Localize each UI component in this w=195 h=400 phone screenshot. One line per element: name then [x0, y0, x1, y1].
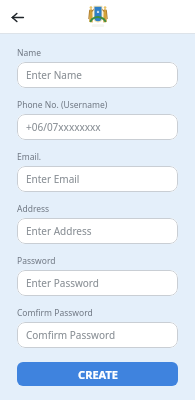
staticText: Name [17, 47, 41, 59]
staticText: Address [17, 203, 50, 215]
button[interactable]: Enter Name [17, 62, 178, 88]
staticText: Enter Password [26, 276, 99, 290]
button[interactable]: Enter Email [17, 166, 178, 192]
button[interactable]: Enter Address [17, 218, 178, 244]
button[interactable]: Back [4, 4, 30, 30]
staticText: Comfirm Password [26, 328, 116, 342]
button[interactable]: +06/07xxxxxxxx [17, 114, 178, 140]
staticText: Phone No. (Username) [17, 99, 108, 111]
button[interactable]: Comfirm Password [17, 322, 178, 348]
button[interactable]: Enter Password [17, 270, 178, 296]
staticText: Email. [17, 151, 42, 163]
staticText: Enter Name [26, 68, 82, 82]
staticText: CREATE [78, 367, 118, 382]
staticText: Password [17, 255, 56, 267]
staticText: Enter Address [26, 224, 92, 238]
staticText: Comfirm Password [17, 307, 93, 319]
staticText: +06/07xxxxxxxx [26, 120, 101, 134]
staticText: Enter Email [26, 172, 80, 186]
button[interactable]: CREATE [17, 362, 178, 386]
